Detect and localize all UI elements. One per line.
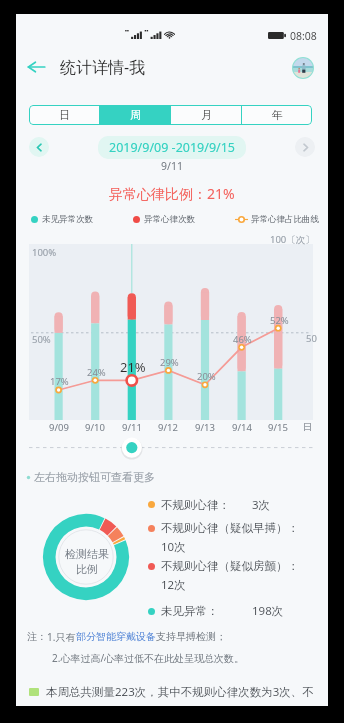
staticText: 12次 xyxy=(161,577,186,593)
staticText: 100% xyxy=(32,246,57,259)
staticText: 9/09 xyxy=(49,421,69,434)
staticText: 比例 xyxy=(76,562,98,576)
staticText: 未见异常： xyxy=(161,604,219,618)
staticText: 3次 xyxy=(252,497,271,513)
staticText: 9/13 xyxy=(195,421,215,434)
staticText: 52% xyxy=(270,314,289,327)
staticText: 注： xyxy=(27,630,47,643)
staticText: 24% xyxy=(87,366,106,379)
button[interactable]: 月 xyxy=(171,105,241,125)
button[interactable]: Previous week xyxy=(29,137,49,157)
button[interactable]: Back xyxy=(21,52,51,82)
staticText: 9/14 xyxy=(232,421,252,434)
staticText: 统计详情-我 xyxy=(60,56,146,78)
staticText: 检测结果 xyxy=(65,547,109,561)
staticText: 部分智能穿戴设备 xyxy=(76,630,156,643)
staticText: 9/12 xyxy=(158,421,178,434)
staticText: 异常心律比例：21% xyxy=(109,184,235,202)
button[interactable]: 周 xyxy=(100,105,170,125)
button[interactable]: 2019/9/09 -2019/9/15 xyxy=(98,136,246,159)
staticText: 46% xyxy=(233,333,252,346)
staticText: 29% xyxy=(160,356,179,369)
staticText: 左右拖动按钮可查看更多 xyxy=(34,470,155,484)
staticText: 2019/9/09 -2019/9/15 xyxy=(109,139,235,156)
staticText: 周 xyxy=(130,108,141,122)
staticText: 100〔次〕 xyxy=(270,233,315,246)
staticText: 日 xyxy=(303,421,313,433)
staticText: 日 xyxy=(59,108,70,122)
staticText: 10次 xyxy=(161,539,186,555)
staticText: 08:08 xyxy=(290,29,317,43)
staticText: 198次 xyxy=(252,603,284,619)
staticText: 异常心律次数 xyxy=(144,214,195,225)
staticText: 9/11 xyxy=(122,421,142,434)
staticText: 9/15 xyxy=(268,421,288,434)
button[interactable]: 日 xyxy=(29,105,99,125)
staticText: 9/11 xyxy=(161,159,183,173)
staticText: 异常心律占比曲线 xyxy=(251,214,319,225)
staticText: 不规则心律（疑似早搏）： xyxy=(161,521,299,535)
staticText: 21% xyxy=(120,358,146,376)
staticText: 20% xyxy=(197,370,216,383)
staticText: 不规则心律（疑似房颤）： xyxy=(161,559,299,573)
staticText: 支持早搏检测； xyxy=(156,630,226,643)
staticText: 50% xyxy=(32,333,51,346)
button[interactable]: Next week xyxy=(295,137,315,157)
staticText: 不规则心律： xyxy=(161,498,230,512)
staticText: 未见异常次数 xyxy=(42,214,93,225)
staticText: 本周总共测量223次，其中不规则心律次数为3次、不 xyxy=(46,684,314,700)
button[interactable]: Profile xyxy=(293,58,313,78)
staticText: 月 xyxy=(201,108,212,122)
button[interactable]: 年 xyxy=(242,105,312,125)
staticText: 17% xyxy=(50,375,69,388)
staticText: 1.只有 xyxy=(47,630,76,644)
staticText: 50 xyxy=(306,332,317,345)
staticText: 9/10 xyxy=(85,421,105,434)
staticText: 2.心率过高/心率过低不在此处呈现总次数。 xyxy=(52,651,245,665)
staticText: 年 xyxy=(272,108,283,122)
